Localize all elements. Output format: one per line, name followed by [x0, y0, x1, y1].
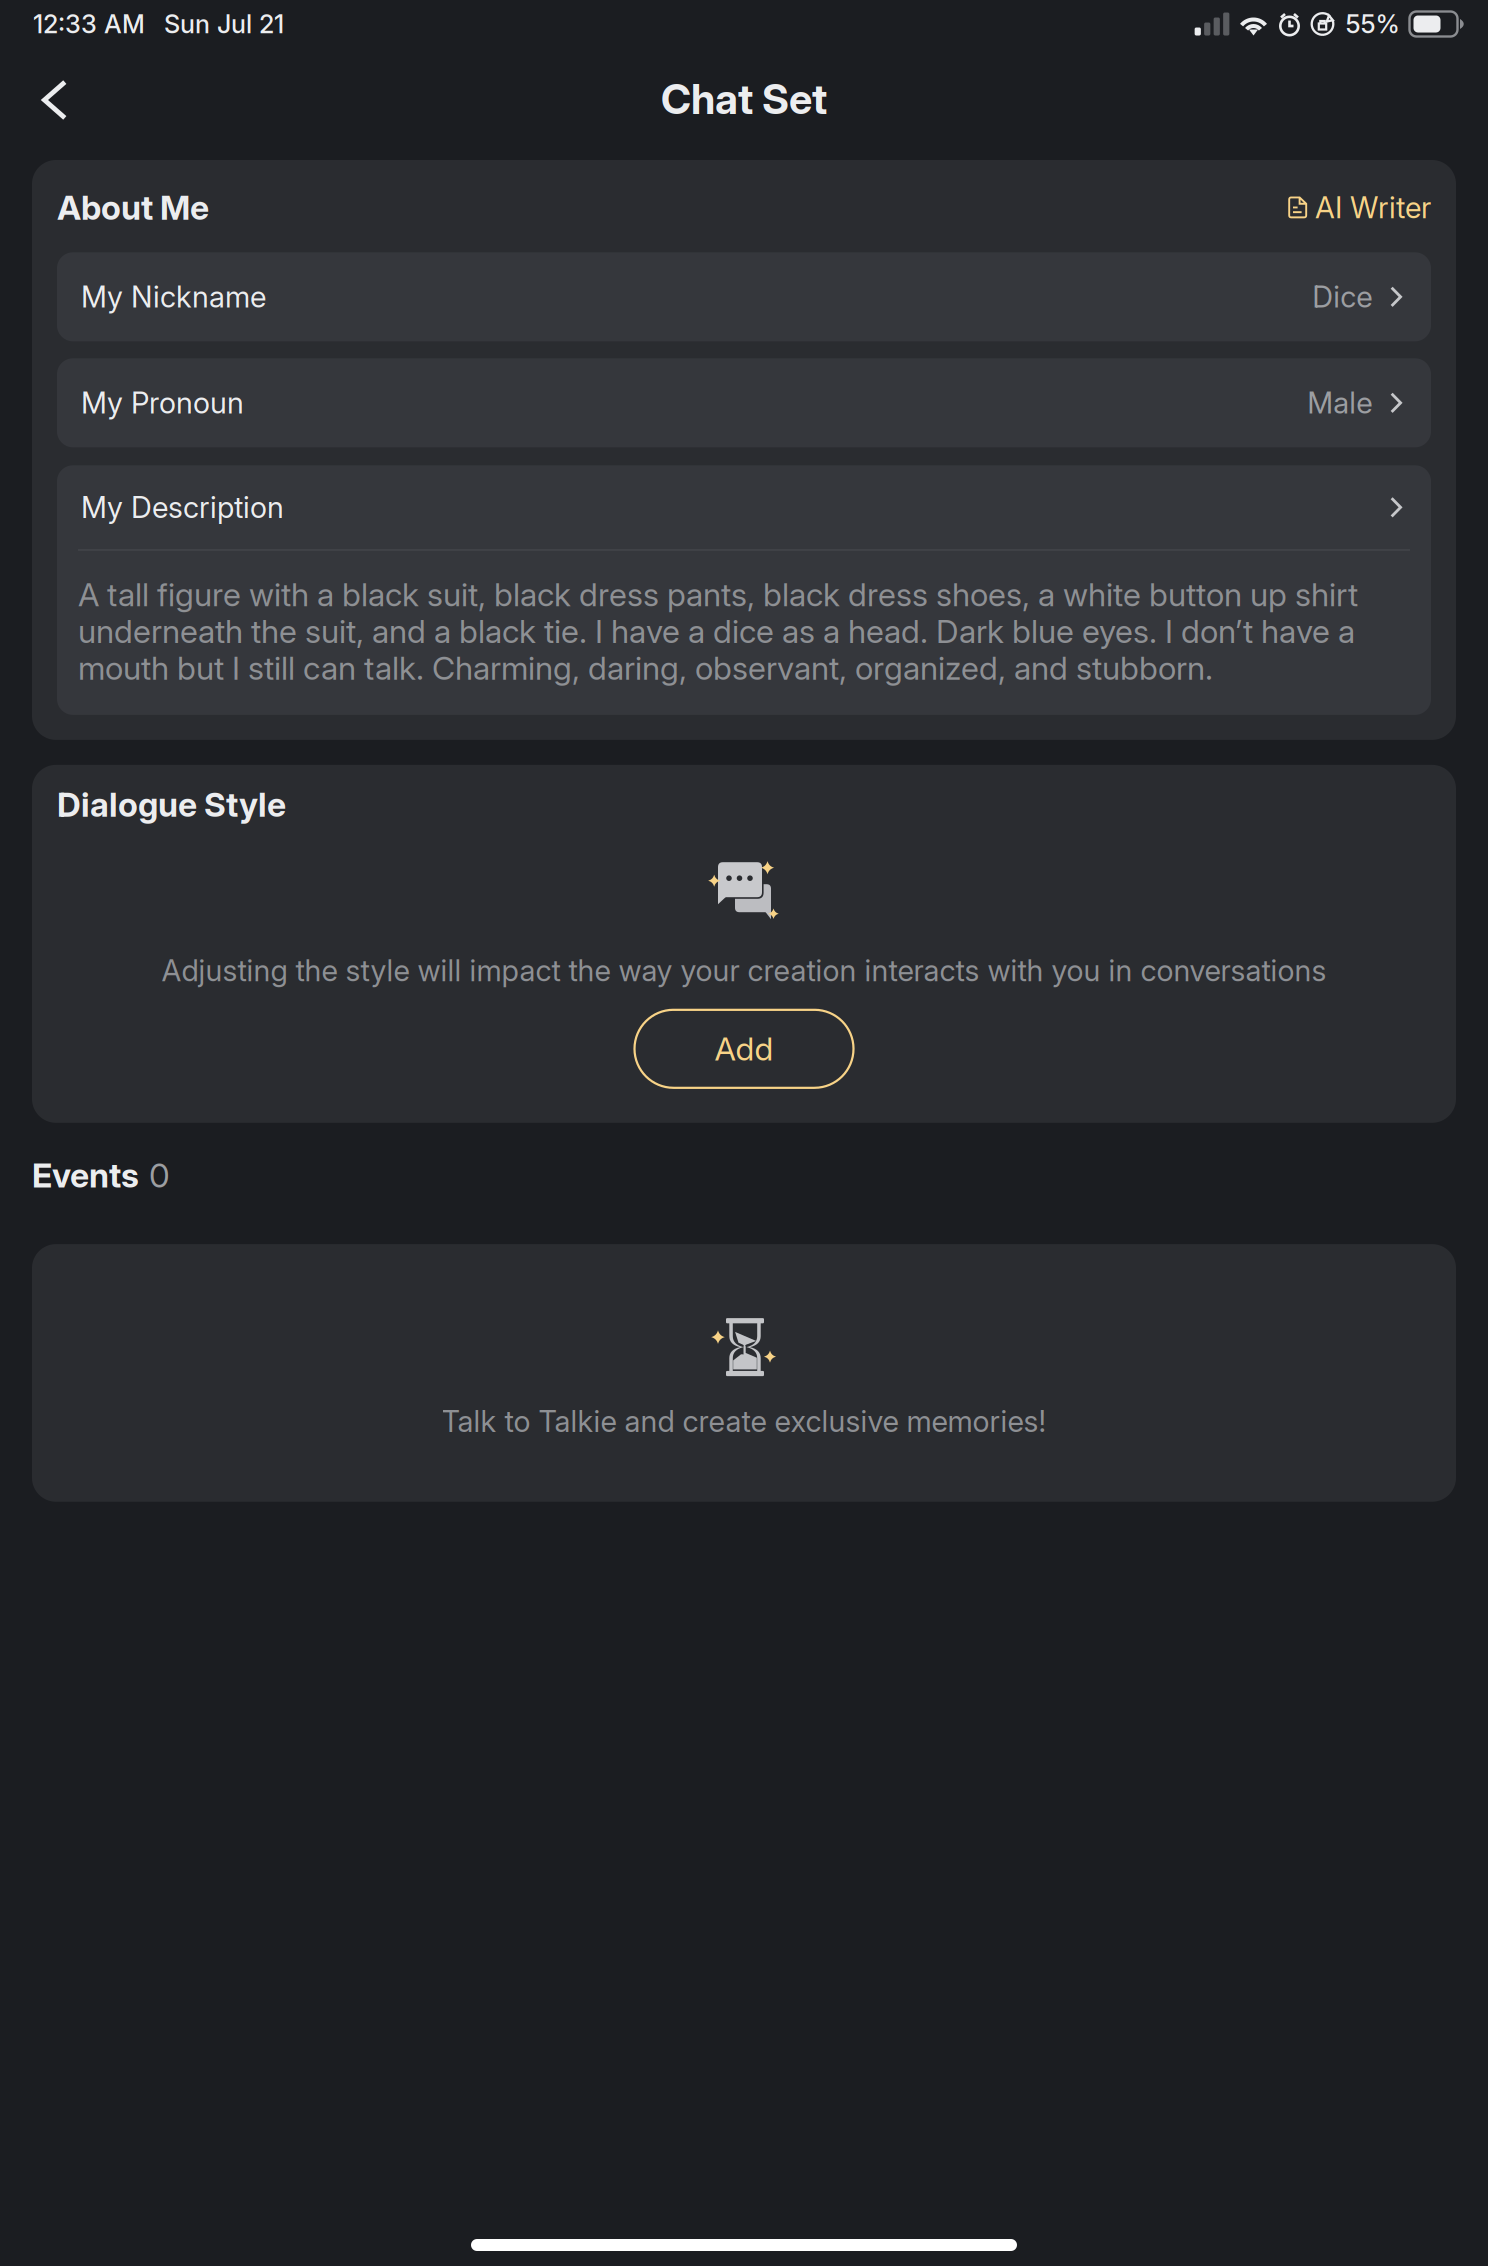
staticText: Sun Jul 21: [164, 9, 284, 39]
button[interactable]: My Nickname: [57, 252, 1431, 341]
button[interactable]: Add: [634, 1010, 853, 1088]
staticText: 12:33 AM: [33, 9, 145, 39]
staticText: 0: [149, 1156, 170, 1195]
staticText: A tall figure with a black suit, black d…: [78, 576, 1358, 687]
button[interactable]: My Pronoun: [57, 358, 1431, 447]
staticText: My Pronoun: [81, 385, 244, 420]
staticText: Male: [1307, 385, 1372, 420]
button[interactable]: Back: [0, 68, 93, 140]
staticText: AI Writer: [1315, 190, 1431, 225]
staticText: Dialogue Style: [57, 785, 286, 824]
button[interactable]: AI Writer: [1288, 190, 1431, 225]
staticText: My Nickname: [81, 279, 266, 314]
staticText: Talk to Talkie and create exclusive memo…: [441, 1404, 1046, 1439]
staticText: Chat Set: [661, 75, 827, 123]
staticText: Dice: [1312, 279, 1372, 314]
staticText: About Me: [57, 188, 209, 227]
staticText: My Description: [81, 490, 284, 525]
staticText: Events: [32, 1156, 139, 1195]
staticText: 55%: [1345, 9, 1399, 39]
staticText: Adjusting the style will impact the way …: [161, 953, 1326, 988]
staticText: Add: [714, 1030, 773, 1068]
button[interactable]: My Description: [57, 465, 1431, 715]
